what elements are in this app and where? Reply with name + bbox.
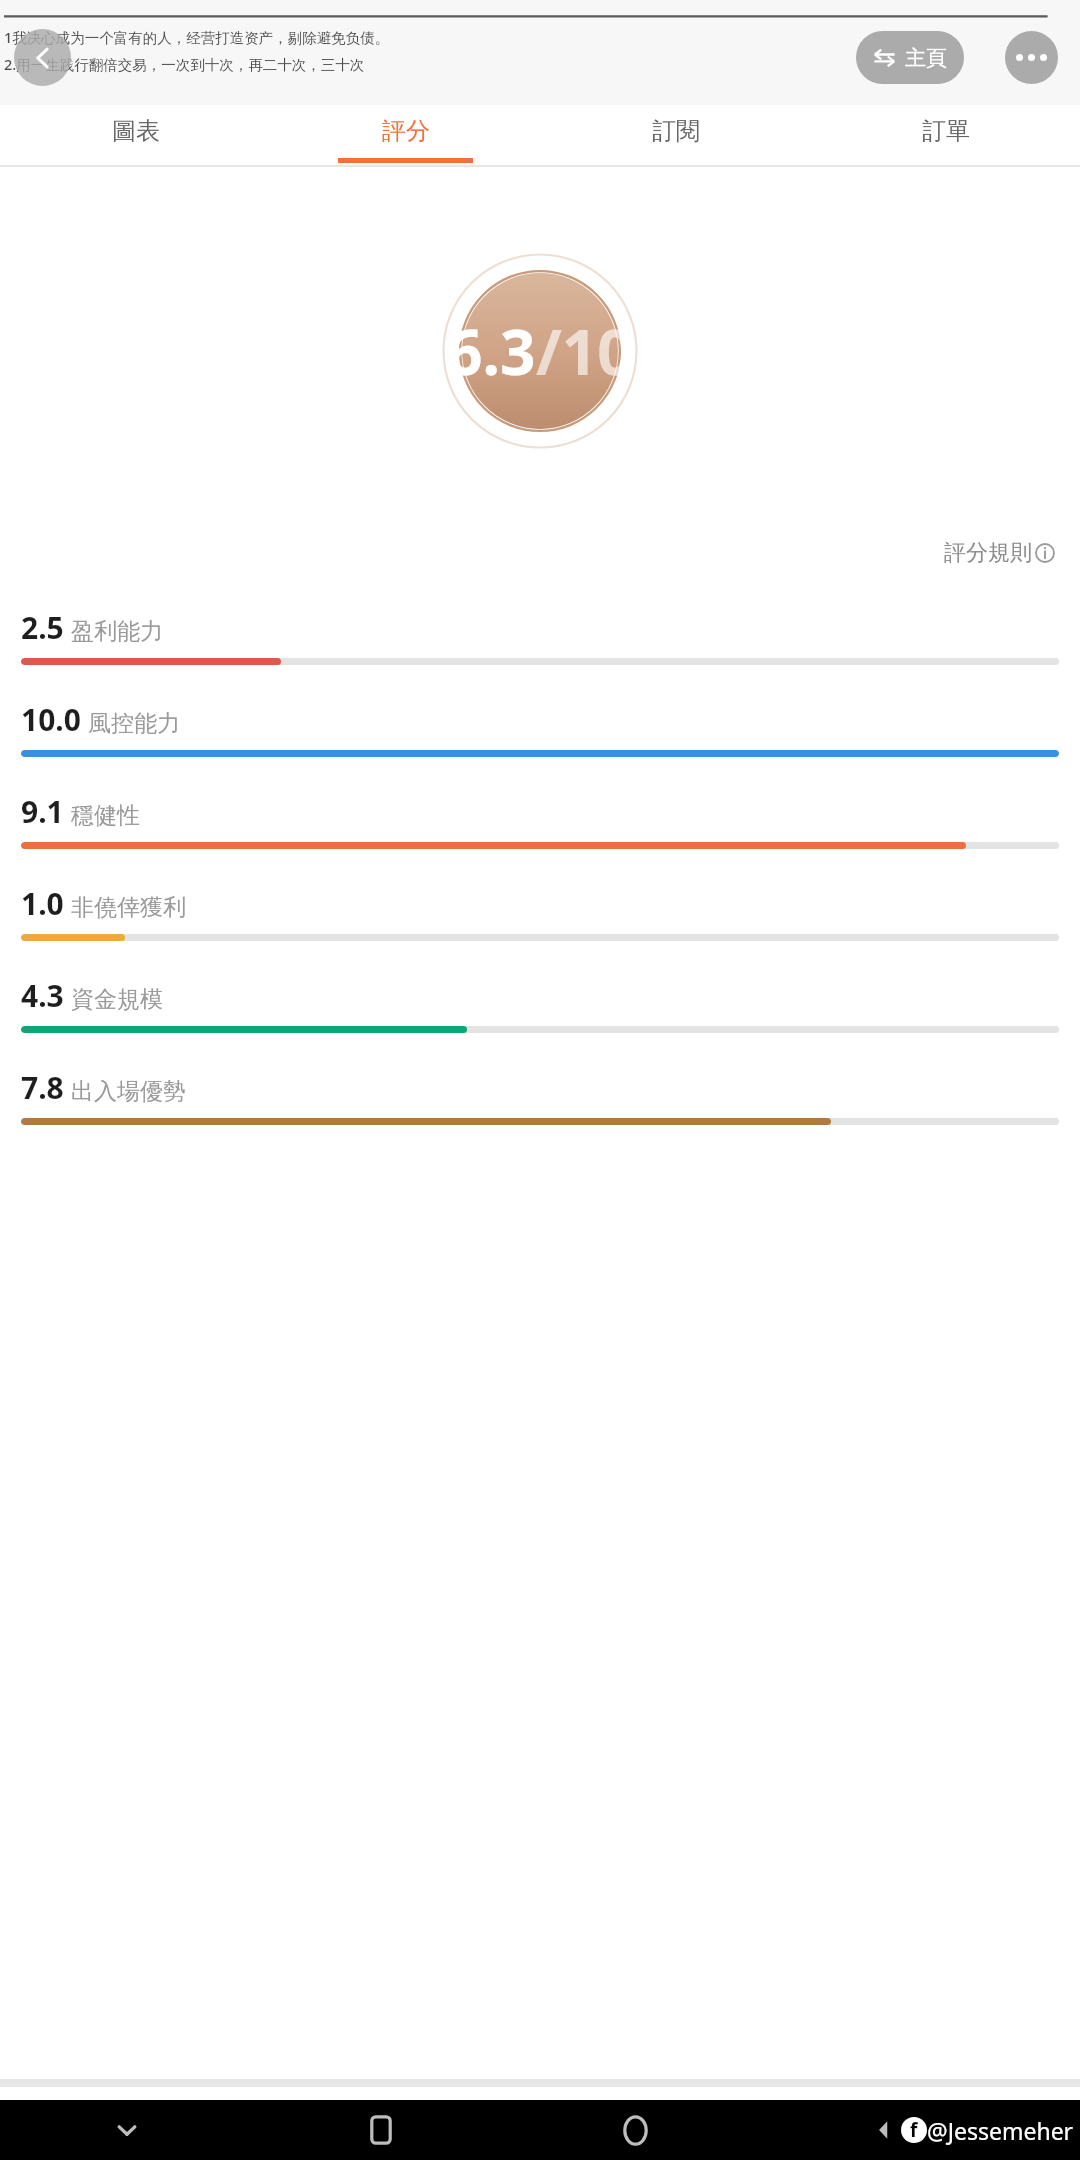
staticText: 10.0 <box>21 699 81 740</box>
staticText: 風控能力 <box>88 709 180 738</box>
button[interactable]: 訂單 <box>810 105 1080 165</box>
staticText: 7.8 <box>21 1067 64 1108</box>
button[interactable]: 評分 <box>270 105 540 165</box>
button[interactable]: 評分規則 <box>940 535 1059 571</box>
staticText: 圖表 <box>112 116 160 146</box>
staticText: 9.1 <box>21 791 64 832</box>
staticText: /10 <box>536 309 633 393</box>
button[interactable]: 9.1 <box>0 791 1080 883</box>
button[interactable]: More options <box>1005 31 1058 84</box>
staticText: 訂閱 <box>652 116 700 146</box>
button[interactable]: 圖表 <box>0 105 270 165</box>
staticText: 訂單 <box>922 116 970 146</box>
staticText: 6.3 <box>447 309 536 393</box>
button[interactable]: Recent apps <box>254 2100 508 2160</box>
button[interactable]: 2.5 <box>0 607 1080 699</box>
button[interactable]: 4.3 <box>0 975 1080 1067</box>
staticText: 非僥倖獲利 <box>71 893 186 922</box>
button[interactable]: Back <box>0 2100 254 2160</box>
staticText: @Jessemeher <box>927 2115 1074 2146</box>
staticText: 出入場優勢 <box>71 1077 186 1106</box>
staticText: 4.3 <box>21 975 64 1016</box>
staticText: 1我决心成为一个富有的人，经营打造资产，剔除避免负债。 <box>4 27 390 47</box>
staticText: 1.0 <box>21 883 64 924</box>
button[interactable]: 1.0 <box>0 883 1080 975</box>
button[interactable]: Back <box>14 29 71 86</box>
staticText: f <box>910 2117 918 2143</box>
staticText: 2.5 <box>21 607 64 648</box>
button[interactable]: 10.0 <box>0 699 1080 791</box>
button[interactable]: Home <box>508 2100 762 2160</box>
staticText: 資金規模 <box>71 985 163 1014</box>
staticText: 評分 <box>382 116 430 146</box>
button[interactable]: 7.8 <box>0 1067 1080 1159</box>
staticText: 主頁 <box>905 45 947 71</box>
staticText: 2.用一生践行翻倍交易，一次到十次，再二十次，三十次 <box>4 54 365 74</box>
button[interactable]: 訂閱 <box>540 105 810 165</box>
button[interactable]: 主頁 <box>856 31 964 84</box>
staticText: 盈利能力 <box>71 617 163 646</box>
staticText: 穩健性 <box>71 801 140 830</box>
staticText: 評分規則 <box>944 539 1032 567</box>
